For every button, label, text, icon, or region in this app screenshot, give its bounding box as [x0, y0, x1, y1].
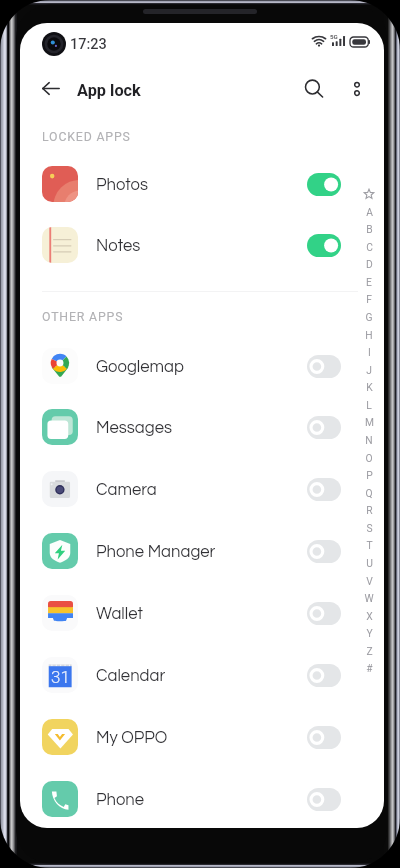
button[interactable]: Search	[296, 71, 331, 106]
button[interactable]: Googlemap	[20, 335, 384, 397]
staticText: H	[365, 329, 373, 341]
staticText: M	[365, 416, 374, 428]
button[interactable]: Back	[33, 71, 68, 106]
button[interactable]: Turn on	[307, 540, 341, 563]
button[interactable]: Turn off	[307, 173, 341, 196]
staticText: U	[366, 557, 373, 569]
button[interactable]: Messages	[20, 396, 384, 458]
staticText: F	[366, 293, 372, 305]
staticText: Phone Manager	[96, 543, 216, 560]
button[interactable]: Turn on	[307, 726, 341, 749]
button[interactable]: Turn on	[307, 416, 341, 439]
staticText: 17:23	[70, 36, 107, 53]
staticText: O	[365, 452, 373, 464]
staticText: T	[366, 539, 373, 551]
staticText: App lock	[77, 81, 141, 100]
staticText: Z	[366, 645, 373, 657]
button[interactable]: More options	[339, 71, 374, 106]
staticText: B	[366, 223, 373, 235]
staticText: C	[366, 241, 373, 253]
staticText: G	[365, 311, 373, 323]
button[interactable]: 31	[20, 644, 384, 706]
button[interactable]: Wallet	[20, 582, 384, 644]
staticText: Messages	[96, 419, 173, 436]
staticText: #	[366, 662, 373, 674]
button[interactable]: Phone Manager	[20, 520, 384, 582]
button[interactable]: Turn on	[307, 478, 341, 501]
staticText: I	[368, 346, 371, 358]
staticText: W	[364, 592, 374, 604]
button[interactable]: Phone	[20, 768, 384, 828]
staticText: S	[366, 522, 373, 534]
staticText: K	[366, 381, 373, 393]
staticText: R	[366, 504, 373, 516]
staticText: Q	[365, 487, 373, 499]
button[interactable]: Turn on	[307, 788, 341, 811]
staticText: P	[366, 469, 373, 481]
staticText: Wallet	[96, 605, 143, 622]
button[interactable]: Photos	[20, 153, 384, 215]
staticText: OTHER APPS	[42, 310, 124, 324]
staticText: 31	[51, 667, 70, 687]
staticText: Googlemap	[96, 358, 184, 375]
staticText: J	[366, 364, 372, 376]
button[interactable]: Turn on	[307, 355, 341, 378]
staticText: X	[366, 610, 373, 622]
staticText: D	[366, 258, 373, 270]
staticText: LOCKED APPS	[42, 130, 131, 144]
staticText: A	[366, 206, 373, 218]
staticText: N	[365, 434, 373, 446]
staticText: V	[366, 575, 373, 587]
button[interactable]: Alphabet index	[361, 185, 377, 677]
button[interactable]: My OPPO	[20, 706, 384, 768]
staticText: My OPPO	[96, 729, 168, 746]
staticText: Photos	[96, 176, 149, 193]
button[interactable]: Camera	[20, 458, 384, 520]
button[interactable]: Turn off	[307, 234, 341, 257]
button[interactable]: Notes	[20, 214, 384, 276]
staticText: E	[366, 276, 372, 288]
button[interactable]: Turn on	[307, 664, 341, 687]
staticText: Y	[366, 627, 373, 639]
staticText: Calendar	[96, 667, 166, 684]
staticText: 5G	[330, 33, 338, 40]
staticText: Notes	[96, 237, 141, 254]
button[interactable]: Turn on	[307, 602, 341, 625]
staticText: Phone	[96, 791, 145, 808]
staticText: Camera	[96, 481, 157, 498]
staticText: L	[366, 399, 372, 411]
